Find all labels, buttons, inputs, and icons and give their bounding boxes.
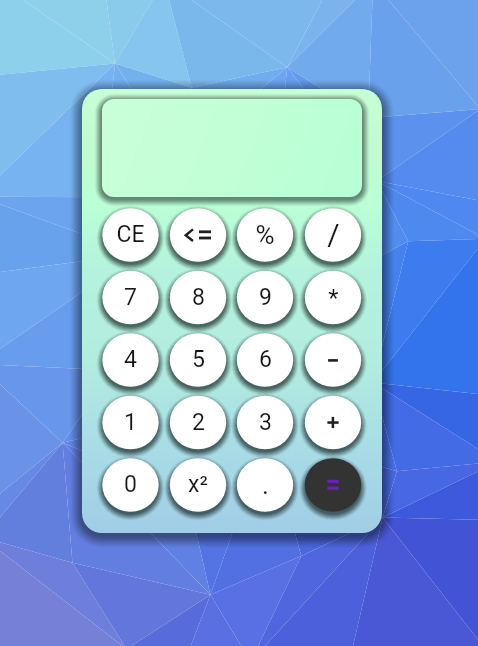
button[interactable]: Equals <box>305 458 361 511</box>
button[interactable]: Square <box>170 458 226 511</box>
button[interactable]: 4 <box>102 333 158 386</box>
staticText: 1 <box>124 409 137 436</box>
staticText: * <box>328 284 339 312</box>
button[interactable]: 1 <box>102 396 158 449</box>
staticText: 0 <box>124 471 137 498</box>
button[interactable]: 2 <box>170 396 226 449</box>
staticText: 5 <box>192 346 205 373</box>
staticText: . <box>262 470 269 500</box>
button[interactable]: Add <box>305 396 361 449</box>
button[interactable]: Multiply <box>305 271 361 324</box>
button[interactable]: 5 <box>170 333 226 386</box>
button[interactable]: 8 <box>170 271 226 324</box>
button[interactable]: Backspace <box>170 208 226 261</box>
button[interactable]: CE <box>102 208 158 261</box>
staticText: 8 <box>192 284 205 311</box>
button[interactable]: 6 <box>237 333 293 386</box>
staticText: x² <box>188 471 208 498</box>
button[interactable]: Decimal point <box>237 458 293 511</box>
staticText: 3 <box>259 409 272 436</box>
button[interactable]: Divide <box>305 208 361 261</box>
staticText: 4 <box>124 346 137 373</box>
button[interactable]: Subtract <box>305 333 361 386</box>
button[interactable]: 3 <box>237 396 293 449</box>
staticText: 9 <box>259 284 272 311</box>
button[interactable]: 9 <box>237 271 293 324</box>
staticText: % <box>255 220 275 250</box>
staticText: / <box>327 217 340 252</box>
button[interactable]: 7 <box>102 271 158 324</box>
staticText: 6 <box>259 346 272 373</box>
staticText: 2 <box>192 409 205 436</box>
staticText: CE <box>116 221 145 248</box>
button[interactable]: 0 <box>102 458 158 511</box>
button[interactable]: Percent <box>237 208 293 261</box>
staticText: 7 <box>124 284 137 311</box>
